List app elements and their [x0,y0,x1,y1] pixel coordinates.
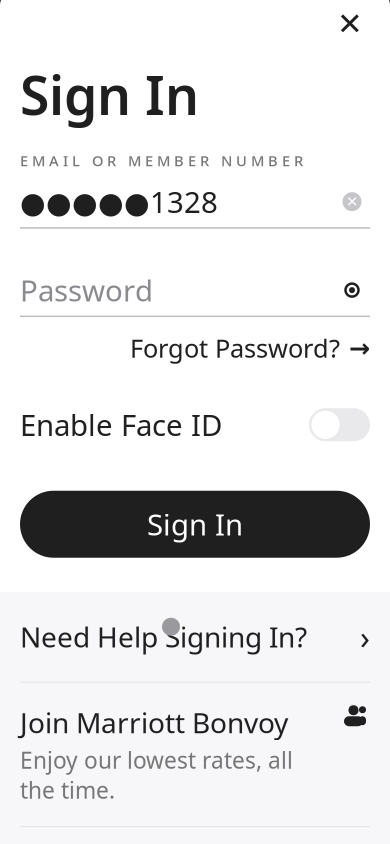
staticText: Need Help Signing In? [20,618,307,655]
staticText: ✕ [346,193,358,210]
staticText: Join Marriott Bonvoy [20,704,288,741]
button[interactable]: Sign In [20,491,370,558]
button[interactable]: Close [328,2,372,46]
button[interactable]: Need Help Signing In? [0,592,390,682]
staticText: Sign In [147,505,243,544]
staticText: Sign In [20,59,199,130]
staticText: E M A I L O R M E M B E R N U M B E R [20,151,303,170]
staticText: ✕ [337,6,363,41]
button[interactable]: Show password [334,272,370,308]
button[interactable]: Join Marriott Bonvoy [0,683,390,826]
staticText: Enjoy our lowest rates, all the time. [20,745,293,805]
button[interactable]: Enable Face ID [309,403,370,447]
button[interactable]: Clear text [334,184,370,220]
staticText: Password [20,271,153,310]
button[interactable]: Forgot Password? [130,323,370,373]
staticText: → [349,333,370,362]
staticText: Enable Face ID [20,405,222,444]
staticText: ●●●●●1328 [20,182,218,221]
staticText: › [360,615,370,658]
staticText: Forgot Password? [130,331,340,365]
